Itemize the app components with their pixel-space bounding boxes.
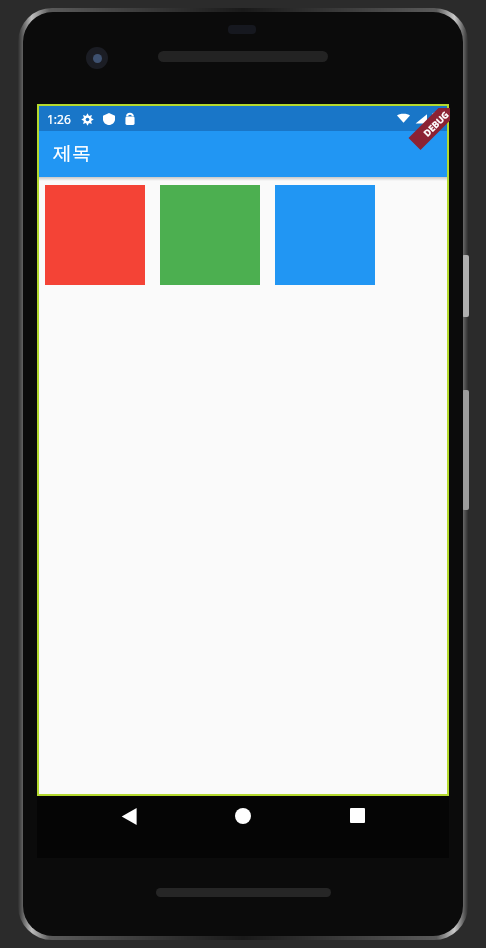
- staticText: 제목: [53, 142, 91, 166]
- button[interactable]: Home: [221, 808, 265, 852]
- button[interactable]: Recents: [335, 808, 379, 852]
- staticText: 1:26: [47, 111, 71, 127]
- staticText: DEBUG: [420, 108, 450, 139]
- button[interactable]: 제목: [39, 131, 447, 177]
- button[interactable]: Back: [107, 808, 151, 852]
